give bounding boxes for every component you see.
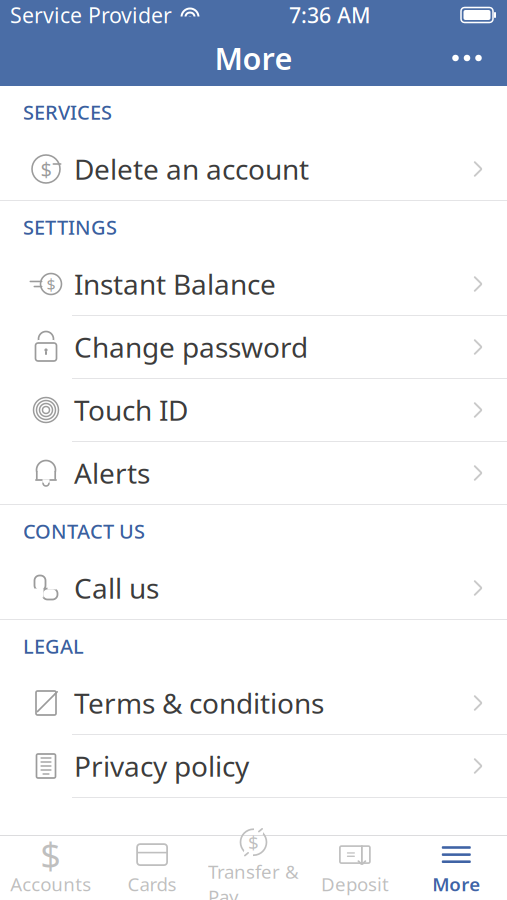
button[interactable]: Change password bbox=[0, 316, 507, 378]
staticText: Deposit bbox=[321, 872, 389, 896]
staticText: SERVICES bbox=[23, 99, 112, 125]
staticText: Alerts bbox=[74, 454, 150, 492]
button[interactable]: Privacy policy bbox=[0, 735, 507, 797]
staticText: Touch ID bbox=[74, 391, 188, 429]
button[interactable]: More options bbox=[439, 36, 495, 80]
staticText: Service Provider bbox=[10, 1, 172, 29]
button[interactable]: Terms & conditions bbox=[0, 672, 507, 734]
staticText: Change password bbox=[74, 328, 308, 366]
button[interactable]: $ bbox=[0, 138, 507, 200]
button[interactable]: Touch ID bbox=[0, 379, 507, 441]
staticText: Accounts bbox=[10, 872, 91, 896]
staticText: Privacy policy bbox=[74, 747, 249, 785]
staticText: LEGAL bbox=[23, 633, 84, 659]
staticText: $ bbox=[248, 830, 259, 855]
button[interactable]: $ bbox=[203, 836, 304, 900]
staticText: Instant Balance bbox=[74, 265, 276, 303]
staticText: More bbox=[432, 872, 480, 896]
staticText: Delete an account bbox=[74, 150, 309, 188]
button[interactable]: Cards bbox=[101, 836, 203, 900]
staticText: Transfer & Pay bbox=[208, 859, 299, 900]
button[interactable]: $ bbox=[0, 253, 507, 315]
staticText: Terms & conditions bbox=[74, 684, 324, 722]
button[interactable]: $ bbox=[0, 836, 101, 900]
staticText: SETTINGS bbox=[23, 214, 117, 240]
staticText: $ bbox=[40, 831, 61, 878]
staticText: Call us bbox=[74, 569, 159, 607]
staticText: $ bbox=[40, 156, 51, 182]
staticText: More bbox=[214, 38, 292, 78]
staticText: CONTACT US bbox=[23, 518, 145, 544]
button[interactable]: Alerts bbox=[0, 442, 507, 504]
button[interactable]: Call us bbox=[0, 557, 507, 619]
staticText: Cards bbox=[128, 872, 177, 896]
staticText: $ bbox=[46, 273, 55, 295]
staticText: 7:36 AM bbox=[289, 1, 371, 29]
button[interactable]: More bbox=[406, 836, 507, 900]
button[interactable]: Deposit bbox=[304, 836, 406, 900]
